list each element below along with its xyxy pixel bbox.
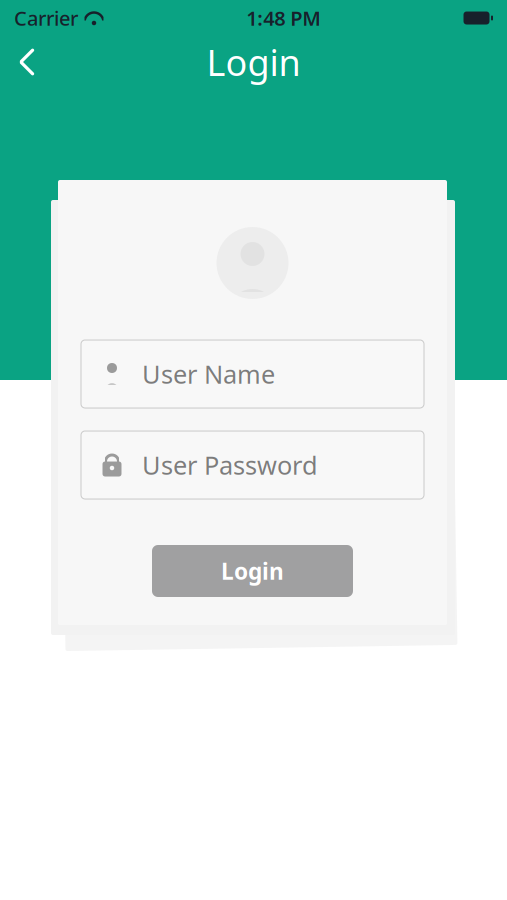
staticText: Login bbox=[221, 556, 284, 586]
staticText: User Password bbox=[142, 448, 318, 482]
staticText: 1:48 PM bbox=[246, 5, 321, 31]
button[interactable]: Back bbox=[0, 35, 54, 89]
button[interactable]: User Name bbox=[81, 340, 424, 408]
staticText: Carrier bbox=[14, 5, 78, 31]
button[interactable]: User Password bbox=[81, 431, 424, 499]
staticText: User Name bbox=[142, 357, 275, 391]
button[interactable]: Login bbox=[152, 545, 353, 597]
staticText: Login bbox=[206, 38, 300, 86]
